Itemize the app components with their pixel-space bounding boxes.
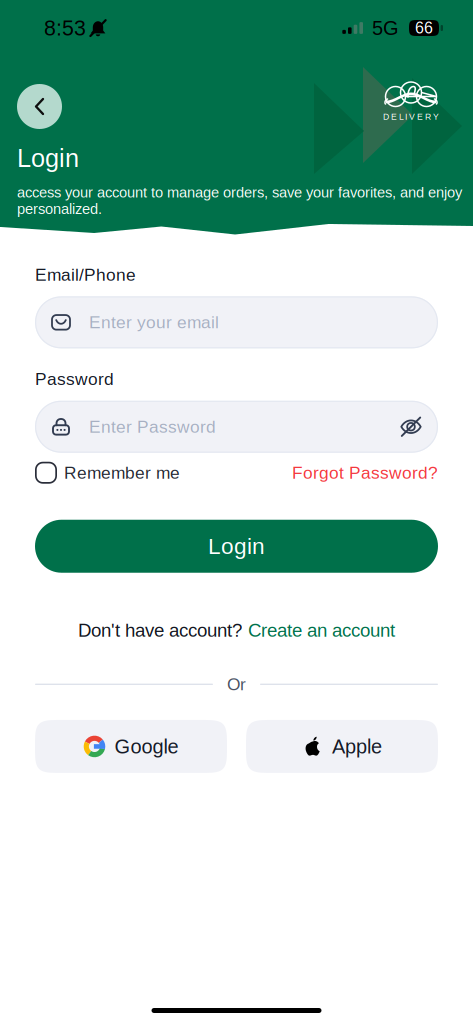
staticText: Or bbox=[227, 675, 246, 694]
staticText: Google bbox=[114, 735, 178, 758]
button[interactable]: Show password bbox=[400, 416, 422, 438]
staticText: Remember me bbox=[64, 463, 180, 482]
button[interactable]: Back bbox=[17, 84, 62, 129]
button[interactable]: Create an account bbox=[248, 620, 395, 641]
button[interactable]: Apple bbox=[246, 720, 438, 773]
staticText: access your account to manage orders, sa… bbox=[17, 184, 462, 217]
staticText: Login bbox=[208, 534, 265, 559]
staticText: Email/Phone bbox=[35, 265, 136, 284]
staticText: Create an account bbox=[248, 620, 395, 641]
staticText: Forgot Password? bbox=[292, 463, 438, 482]
staticText: 5G bbox=[372, 17, 399, 39]
staticText: Enter your email bbox=[89, 313, 219, 332]
staticText: Enter Password bbox=[89, 417, 216, 436]
staticText: 66 bbox=[415, 19, 433, 37]
staticText: Apple bbox=[332, 735, 382, 758]
staticText: Don't have account? bbox=[78, 620, 242, 641]
staticText: Password bbox=[35, 369, 114, 389]
button[interactable]: Forgot Password? bbox=[292, 463, 438, 482]
button[interactable]: Remember me bbox=[35, 462, 180, 484]
staticText: 8:53 bbox=[44, 16, 86, 40]
button[interactable]: Login bbox=[35, 520, 438, 573]
staticText: D E L I V E R Y bbox=[383, 112, 439, 122]
button[interactable]: Google bbox=[35, 720, 227, 773]
staticText: Login bbox=[17, 144, 79, 172]
